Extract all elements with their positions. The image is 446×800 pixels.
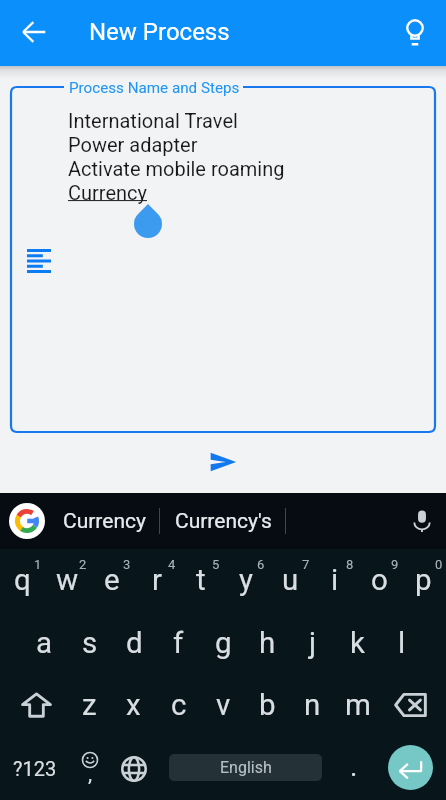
staticText: v [216, 688, 231, 723]
staticText: k [350, 626, 365, 661]
button[interactable]: . [332, 737, 376, 800]
button[interactable]: Google search [9, 503, 45, 539]
staticText: 3 [123, 557, 131, 572]
button[interactable]: English [169, 754, 322, 781]
staticText: d [126, 626, 143, 661]
staticText: z [82, 688, 97, 723]
button[interactable]: Backspace [377, 674, 443, 736]
button[interactable]: r [134, 548, 179, 611]
button[interactable]: d [112, 612, 157, 675]
staticText: t [196, 563, 206, 598]
button[interactable]: i [312, 548, 357, 611]
button[interactable]: n [290, 674, 335, 736]
staticText: 2 [79, 557, 87, 572]
staticText: o [371, 563, 388, 598]
button[interactable]: Currency's [162, 493, 284, 549]
button[interactable]: j [290, 612, 335, 675]
button[interactable]: h [245, 612, 290, 675]
button[interactable]: Enter [388, 745, 433, 790]
button[interactable]: Emoji [68, 737, 112, 800]
staticText: 9 [391, 557, 399, 572]
staticText: l [398, 626, 406, 661]
staticText: e [104, 563, 120, 598]
button[interactable]: Voice input [403, 502, 441, 540]
button[interactable]: u [268, 548, 313, 611]
button[interactable]: Change language [112, 737, 156, 800]
staticText: y [239, 563, 253, 598]
staticText: 5 [212, 557, 220, 572]
staticText: New Process [89, 18, 230, 46]
staticText: s [82, 626, 98, 661]
staticText: u [282, 563, 299, 598]
button[interactable]: Shift [4, 674, 68, 736]
staticText: 4 [168, 557, 176, 572]
button[interactable]: o [357, 548, 402, 611]
other: Emoji [82, 752, 98, 768]
button[interactable]: b [245, 674, 290, 736]
button[interactable]: c [156, 674, 201, 736]
staticText: p [415, 563, 432, 598]
button[interactable]: Currency [48, 493, 160, 549]
button[interactable]: Back [12, 11, 56, 55]
staticText: g [215, 626, 232, 661]
other: Backspace [394, 692, 427, 718]
button[interactable]: a [22, 612, 67, 675]
button[interactable]: k [335, 612, 380, 675]
button[interactable]: g [201, 612, 246, 675]
staticText: b [259, 688, 276, 723]
staticText: 0 [435, 557, 443, 572]
staticText: 8 [346, 557, 354, 572]
staticText: Process Name and Steps [69, 79, 240, 97]
staticText: . [350, 750, 358, 783]
staticText: a [36, 626, 53, 661]
button[interactable]: ?123 [1, 737, 69, 800]
button[interactable]: x [111, 674, 156, 736]
button[interactable]: q [0, 548, 45, 611]
staticText: Currency's [175, 509, 272, 534]
staticText: 7 [302, 557, 310, 572]
staticText: 6 [257, 557, 265, 572]
button[interactable]: z [67, 674, 112, 736]
button[interactable]: w [45, 548, 90, 611]
staticText: ?123 [13, 757, 57, 780]
staticText: English [220, 758, 272, 777]
staticText: m [345, 688, 371, 723]
staticText: 1 [34, 557, 42, 572]
button[interactable]: p [401, 548, 446, 611]
other: Shift [21, 692, 52, 719]
staticText: w [56, 563, 79, 598]
other: Change language [121, 756, 147, 782]
button[interactable]: s [67, 612, 112, 675]
staticText: j [309, 626, 317, 661]
button[interactable]: Tips [393, 11, 437, 55]
button[interactable]: y [223, 548, 268, 611]
staticText: Currency [63, 509, 146, 534]
staticText: Currency [68, 181, 147, 204]
button[interactable]: v [201, 674, 246, 736]
button[interactable]: m [335, 674, 380, 736]
button[interactable]: t [178, 548, 223, 611]
staticText: q [14, 563, 31, 598]
staticText: , [88, 762, 93, 787]
staticText: f [173, 626, 184, 661]
staticText: r [152, 563, 162, 598]
button[interactable]: l [379, 612, 424, 675]
button[interactable]: f [156, 612, 201, 675]
staticText: n [304, 688, 321, 723]
staticText: i [331, 563, 339, 598]
staticText: x [126, 688, 141, 723]
button[interactable]: e [89, 548, 134, 611]
staticText: International Travel Power adapter Activ… [68, 109, 285, 205]
staticText: h [259, 626, 276, 661]
staticText: c [171, 688, 187, 723]
